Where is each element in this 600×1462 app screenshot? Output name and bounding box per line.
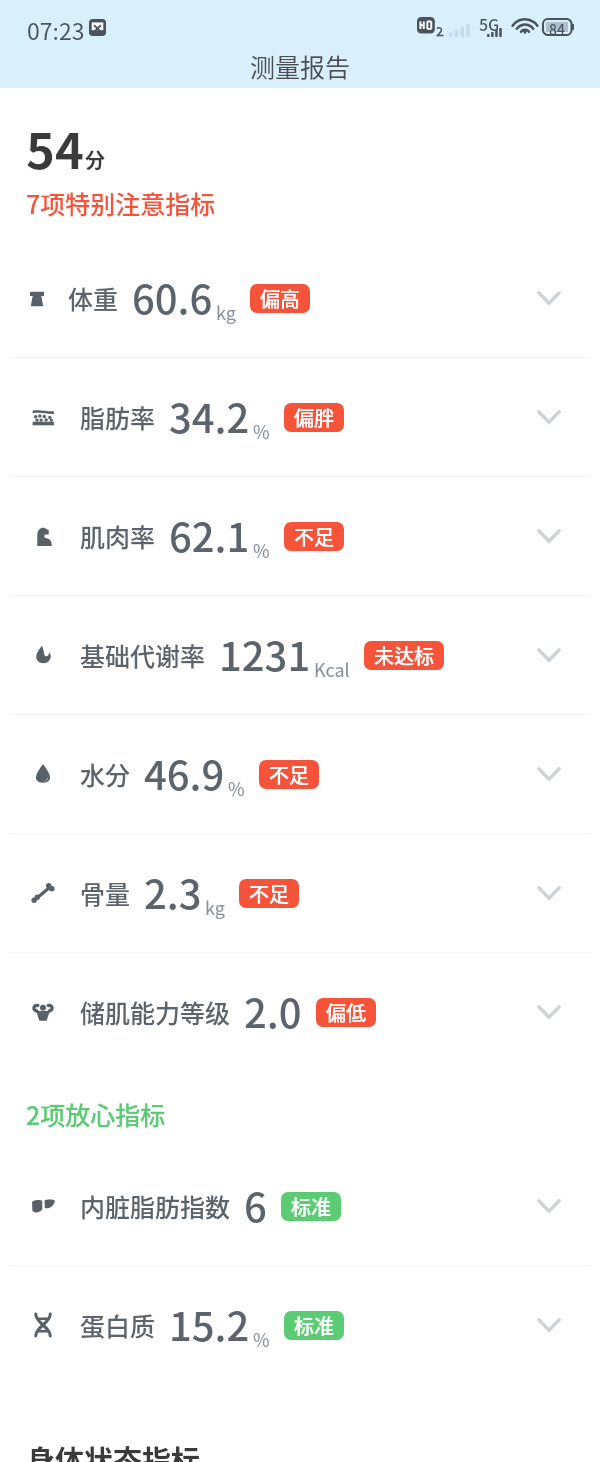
staticText: 标准 — [291, 1192, 331, 1221]
staticText: % — [228, 775, 245, 801]
staticText: 不足 — [294, 522, 334, 551]
button[interactable]: 展开 基础代谢率 — [528, 634, 570, 676]
staticText: 2.0 — [244, 982, 302, 1040]
staticText: 1231 — [219, 625, 311, 683]
staticText: 标准 — [294, 1311, 334, 1340]
staticText: 骨量 — [80, 875, 131, 911]
staticText: kg — [205, 894, 225, 920]
staticText: % — [253, 537, 270, 563]
staticText: kg — [216, 299, 236, 325]
button[interactable]: 内脏脂肪指数 — [0, 1147, 600, 1265]
button[interactable]: 展开 脂肪率 — [528, 396, 570, 438]
staticText: 分 — [85, 145, 105, 174]
button[interactable]: 展开 储肌能力等级 — [528, 991, 570, 1033]
staticText: 5G — [479, 12, 500, 35]
button[interactable]: 展开 骨量 — [528, 872, 570, 914]
button[interactable]: 展开 体重 — [528, 277, 570, 319]
button[interactable]: 储肌能力等级 — [0, 953, 600, 1071]
button[interactable]: 脂肪率 — [0, 358, 600, 476]
staticText: 蛋白质 — [80, 1307, 156, 1343]
button[interactable]: 展开 肌肉率 — [528, 515, 570, 557]
staticText: 肌肉率 — [80, 518, 156, 554]
staticText: 2项放心指标 — [26, 1096, 166, 1132]
staticText: 7项特别注意指标 — [26, 185, 216, 221]
staticText: 偏高 — [260, 284, 300, 313]
staticText: 偏胖 — [294, 403, 334, 432]
staticText: 水分 — [80, 756, 131, 792]
staticText: 偏低 — [326, 998, 366, 1027]
staticText: 储肌能力等级 — [80, 994, 231, 1030]
staticText: 基础代谢率 — [80, 637, 206, 673]
staticText: 未达标 — [374, 641, 434, 670]
staticText: 2.3 — [144, 863, 202, 921]
button[interactable]: 体重 — [0, 239, 600, 357]
staticText: 脂肪率 — [80, 399, 156, 435]
staticText: 身体状态指标 — [26, 1438, 201, 1462]
staticText: % — [253, 418, 270, 444]
staticText: 54 — [26, 112, 84, 183]
staticText: 内脏脂肪指数 — [80, 1188, 231, 1224]
staticText: 不足 — [269, 760, 309, 789]
button[interactable]: 骨量 — [0, 834, 600, 952]
staticText: % — [253, 1326, 270, 1352]
button[interactable]: 展开 水分 — [528, 753, 570, 795]
staticText: 15.2 — [169, 1295, 250, 1353]
staticText: 62.1 — [169, 506, 250, 564]
button[interactable]: 展开 内脏脂肪指数 — [528, 1185, 570, 1227]
button[interactable]: 基础代谢率 — [0, 596, 600, 714]
staticText: 测量报告 — [250, 48, 351, 84]
button[interactable]: 肌肉率 — [0, 477, 600, 595]
staticText: 84 — [549, 19, 565, 39]
staticText: 6 — [244, 1176, 267, 1234]
staticText: 46.9 — [144, 744, 225, 802]
staticText: 体重 — [68, 280, 119, 316]
staticText: 60.6 — [132, 268, 213, 326]
staticText: Kcal — [314, 656, 350, 682]
staticText: 34.2 — [169, 387, 250, 445]
staticText: 不足 — [249, 879, 289, 908]
button[interactable]: 水分 — [0, 715, 600, 833]
staticText: 07:23 — [27, 13, 85, 46]
button[interactable]: 蛋白质 — [0, 1266, 600, 1384]
button[interactable]: 展开 蛋白质 — [528, 1304, 570, 1346]
